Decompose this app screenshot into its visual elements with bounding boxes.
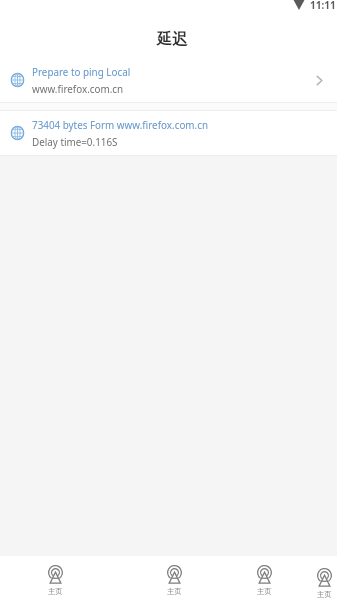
staticText: Delay time=0.116S: [32, 135, 118, 148]
staticText: Prepare to ping Local: [32, 65, 131, 78]
button[interactable]: 主页: [240, 556, 288, 600]
other: Open details: [313, 74, 326, 87]
staticText: 主页: [48, 587, 63, 596]
button[interactable]: 主页: [31, 556, 79, 600]
staticText: 主页: [317, 590, 332, 599]
button[interactable]: 主页: [150, 556, 198, 600]
button[interactable]: 主页: [300, 556, 337, 600]
staticText: 73404 bytes Form www.firefox.com.cn: [32, 118, 208, 131]
staticText: 主页: [257, 587, 272, 596]
staticText: 11:11: [310, 0, 336, 12]
staticText: 延迟: [157, 30, 187, 49]
button[interactable]: Prepare to ping Local: [0, 58, 337, 102]
staticText: 主页: [167, 587, 182, 596]
staticText: www.firefox.com.cn: [32, 82, 124, 95]
button[interactable]: 73404 bytes Form www.firefox.com.cn: [0, 111, 337, 155]
